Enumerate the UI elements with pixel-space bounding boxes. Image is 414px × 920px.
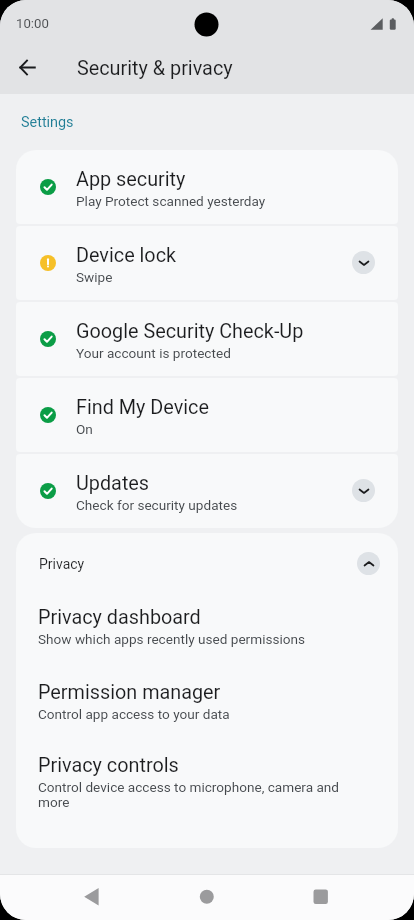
staticText: Security & privacy <box>77 57 233 80</box>
button[interactable]: Find My Device <box>16 378 398 452</box>
staticText: Privacy dashboard <box>38 606 201 629</box>
staticText: Google Security Check-Up <box>76 320 304 343</box>
button[interactable]: Device lock <box>16 226 398 300</box>
staticText: Settings <box>21 114 74 131</box>
button[interactable]: Expand section <box>352 479 375 502</box>
button[interactable]: Privacy controls <box>16 752 398 813</box>
button[interactable]: Privacy <box>16 533 398 594</box>
staticText: Check for security updates <box>76 497 238 513</box>
staticText: Privacy controls <box>38 754 179 777</box>
staticText: 10:00 <box>16 16 49 31</box>
staticText: Control app access to your data <box>38 706 230 722</box>
button[interactable]: Recent apps <box>297 874 345 920</box>
button[interactable]: Navigate up <box>8 48 48 88</box>
staticText: Show which apps recently used permission… <box>38 631 306 647</box>
staticText: Play Protect scanned yesterday <box>76 193 266 209</box>
button[interactable]: Google Security Check-Up <box>16 302 398 376</box>
staticText: Updates <box>76 472 150 495</box>
staticText: Swipe <box>76 269 113 285</box>
button[interactable]: Privacy dashboard <box>16 604 398 649</box>
staticText: Device lock <box>76 244 177 267</box>
button[interactable]: Updates <box>16 454 398 528</box>
staticText: Privacy <box>39 556 357 572</box>
button[interactable]: Expand section <box>352 251 375 274</box>
staticText: Find My Device <box>76 396 209 419</box>
staticText: Control device access to microphone, cam… <box>38 779 368 811</box>
button[interactable]: App security <box>16 150 398 224</box>
button[interactable]: Collapse section <box>357 552 380 575</box>
staticText: Your account is protected <box>76 345 231 361</box>
staticText: App security <box>76 168 186 191</box>
staticText: Permission manager <box>38 681 221 704</box>
staticText: On <box>76 421 93 437</box>
button[interactable]: Permission manager <box>16 679 398 724</box>
button[interactable]: Home <box>183 874 231 920</box>
